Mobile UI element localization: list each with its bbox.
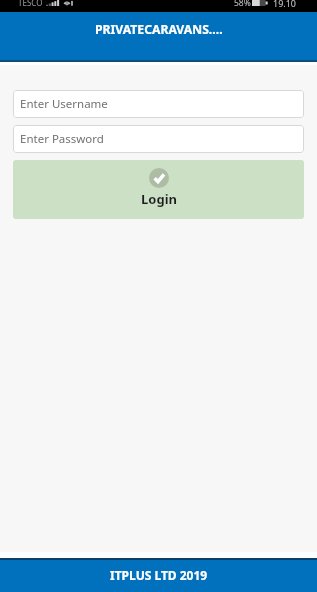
button[interactable]: PRIVATECARAVANS.... — [0, 12, 317, 60]
button[interactable]: Enter Password — [13, 125, 304, 153]
staticText: TESCO — [18, 0, 43, 8]
staticText: Login — [141, 190, 177, 208]
button[interactable]: Login — [13, 160, 304, 219]
staticText: PRIVATECARAVANS.... — [95, 21, 223, 38]
staticText: ITPLUS LTD 2019 — [110, 567, 208, 583]
staticText: Enter Username — [20, 96, 108, 112]
button[interactable]: ITPLUS LTD 2019 — [0, 560, 317, 592]
staticText: 19.10 — [273, 0, 297, 9]
other: Login — [149, 168, 169, 188]
staticText: 58% — [234, 0, 251, 9]
staticText: Enter Password — [20, 131, 104, 147]
button[interactable]: Enter Username — [13, 90, 304, 118]
